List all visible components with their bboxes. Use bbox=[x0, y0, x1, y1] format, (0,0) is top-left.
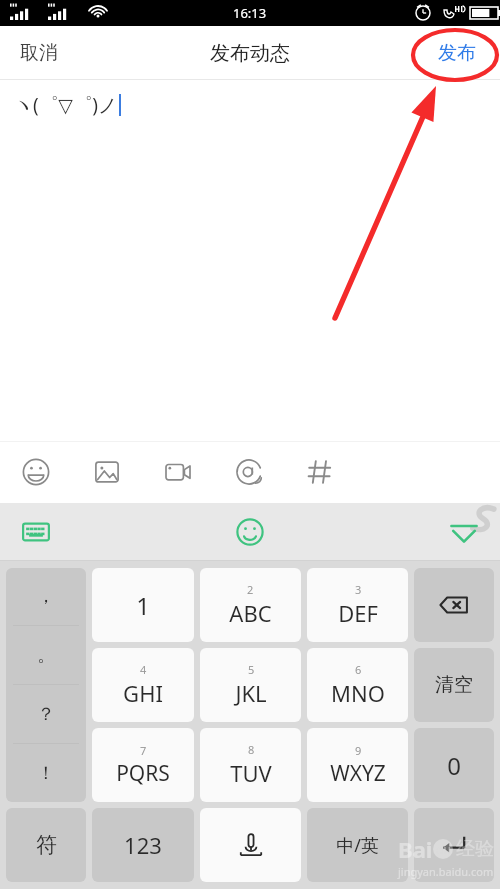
button[interactable]: ヽ(゜▽゜)ノ bbox=[0, 80, 500, 441]
button[interactable]: 0 bbox=[414, 728, 494, 802]
staticText: TUV bbox=[230, 758, 272, 788]
staticText: 4 bbox=[140, 662, 147, 677]
button[interactable]: 取消 bbox=[8, 33, 70, 73]
staticText: 3 bbox=[355, 582, 362, 597]
staticText: 0 bbox=[447, 749, 461, 782]
staticText: 。 bbox=[37, 644, 55, 667]
staticText: 符 bbox=[36, 832, 57, 858]
staticText: du bbox=[436, 841, 451, 857]
button[interactable]: Backspace bbox=[414, 568, 494, 642]
button[interactable]: 3 bbox=[307, 568, 408, 642]
button[interactable]: Hide keyboard bbox=[442, 510, 486, 554]
button[interactable]: Video bbox=[156, 450, 200, 494]
staticText: 取消 bbox=[20, 41, 58, 65]
button[interactable]: 123 bbox=[92, 808, 194, 882]
staticText: ， bbox=[37, 585, 55, 608]
staticText: 9 bbox=[355, 743, 362, 758]
staticText: 经验 bbox=[456, 837, 494, 861]
button[interactable]: ， bbox=[6, 568, 86, 802]
button[interactable]: 9 bbox=[307, 728, 408, 802]
staticText: Bai bbox=[398, 834, 433, 864]
button[interactable]: 符 bbox=[6, 808, 86, 882]
staticText: 123 bbox=[124, 830, 162, 860]
button[interactable]: Keyboard layout bbox=[14, 510, 58, 554]
button[interactable]: Emoji keyboard bbox=[228, 510, 272, 554]
button[interactable]: 1 bbox=[92, 568, 194, 642]
staticText: ABC bbox=[229, 598, 272, 628]
button[interactable]: 5 bbox=[200, 648, 301, 722]
button[interactable]: Topic bbox=[298, 450, 342, 494]
staticText: ！ bbox=[37, 762, 55, 785]
staticText: DEF bbox=[338, 598, 378, 628]
staticText: 7 bbox=[140, 743, 147, 758]
staticText: 发布动态 bbox=[210, 41, 290, 66]
staticText: 6 bbox=[355, 662, 362, 677]
button[interactable]: Photo bbox=[85, 450, 129, 494]
button[interactable]: Mention bbox=[227, 450, 271, 494]
staticText: 5 bbox=[248, 662, 255, 677]
button[interactable]: 2 bbox=[200, 568, 301, 642]
button[interactable]: 发布 bbox=[426, 33, 488, 73]
staticText: ？ bbox=[37, 703, 55, 726]
button[interactable]: 4 bbox=[92, 648, 194, 722]
button[interactable]: Emoji bbox=[14, 450, 58, 494]
button[interactable]: Enter bbox=[414, 808, 494, 882]
button[interactable]: 6 bbox=[307, 648, 408, 722]
staticText: 8 bbox=[248, 742, 255, 757]
staticText: MNO bbox=[331, 678, 385, 708]
staticText: 1 bbox=[136, 589, 150, 622]
button[interactable]: 清空 bbox=[414, 648, 494, 722]
staticText: jingyan.baidu.com bbox=[398, 864, 494, 879]
staticText: PQRS bbox=[116, 759, 170, 788]
staticText: WXYZ bbox=[330, 759, 386, 788]
button[interactable]: 7 bbox=[92, 728, 194, 802]
staticText: 16:13 bbox=[233, 4, 267, 22]
staticText: 2 bbox=[247, 582, 254, 597]
staticText: 清空 bbox=[435, 673, 473, 697]
button[interactable]: Voice input bbox=[200, 808, 301, 882]
button[interactable]: 中/英 bbox=[307, 808, 408, 882]
staticText: GHI bbox=[123, 678, 163, 708]
staticText: ヽ(゜▽゜)ノ bbox=[14, 92, 118, 118]
staticText: 发布 bbox=[438, 41, 476, 65]
staticText: 中/英 bbox=[336, 833, 379, 858]
staticText: JKL bbox=[235, 678, 267, 708]
button[interactable]: 8 bbox=[200, 728, 301, 802]
